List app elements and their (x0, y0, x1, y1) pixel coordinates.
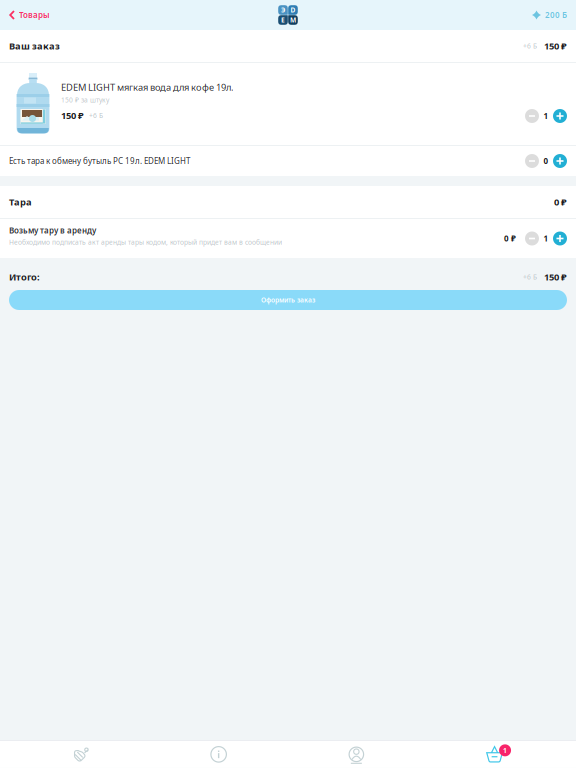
staticText: M (290, 16, 296, 24)
button[interactable]: Убрать один (525, 109, 539, 123)
button[interactable]: Убрать один (525, 231, 539, 245)
staticText: Тара (9, 196, 32, 208)
staticText: 0 ₽ (504, 233, 516, 244)
staticText: 1 (503, 746, 507, 755)
staticText: 1 (543, 233, 548, 244)
button[interactable]: Возьму тару в аренду (0, 219, 576, 258)
staticText: Э (281, 6, 285, 14)
button[interactable]: Товары (12, 741, 150, 768)
button[interactable]: Добавить один (553, 109, 567, 123)
button[interactable]: EDEM LIGHT мягкая вода для кофе 19л. (0, 63, 576, 145)
staticText: Товары (19, 10, 50, 20)
button[interactable]: Оформить заказ (9, 290, 567, 310)
button[interactable]: Корзина, 1 товар (425, 741, 563, 768)
staticText: 200 Б (545, 10, 567, 20)
button[interactable]: Информация (150, 741, 287, 768)
staticText: Ваш заказ (9, 40, 60, 52)
staticText: Необходимо подписать акт аренды тары код… (9, 238, 282, 246)
staticText: Итого: (9, 271, 40, 283)
button[interactable]: Товары (0, 3, 50, 27)
staticText: E (281, 16, 285, 24)
staticText: Оформить заказ (261, 296, 315, 304)
staticText: 150 ₽ за штуку (61, 95, 109, 104)
staticText: 1 (543, 111, 548, 121)
staticText: +6 Б (523, 273, 537, 281)
button[interactable]: Бонусы: 200 (532, 3, 576, 27)
staticText: +6 Б (523, 42, 537, 50)
button[interactable]: Убрать один (525, 154, 539, 168)
staticText: 0 ₽ (554, 196, 567, 208)
staticText: 150 ₽ (544, 271, 567, 283)
staticText: D (290, 6, 295, 14)
button[interactable]: Добавить один (553, 154, 567, 168)
button[interactable]: Есть тара к обмену бутыль PC 19л. EDEM L… (0, 146, 576, 176)
button[interactable]: Профиль (287, 741, 425, 768)
staticText: Возьму тару в аренду (9, 225, 96, 236)
staticText: 0 (543, 156, 548, 166)
staticText: Есть тара к обмену бутыль PC 19л. EDEM L… (9, 156, 190, 166)
staticText: EDEM LIGHT мягкая вода для кофе 19л. (61, 81, 234, 93)
staticText: 150 ₽ (61, 109, 84, 122)
button[interactable]: Добавить один (553, 231, 567, 245)
staticText: +6 Б (89, 111, 103, 120)
staticText: 150 ₽ (544, 40, 567, 52)
